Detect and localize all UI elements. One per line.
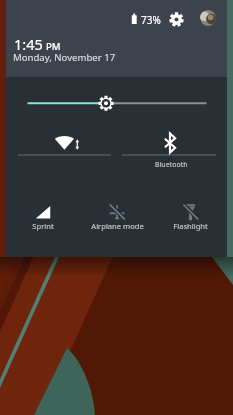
button[interactable]: Airplane mode bbox=[80, 198, 154, 243]
button[interactable]: Flashlight bbox=[154, 198, 227, 243]
staticText: 1:45 bbox=[14, 34, 43, 54]
button[interactable]: Settings bbox=[169, 12, 184, 27]
button[interactable]: Wi-Fi bbox=[6, 122, 116, 178]
button[interactable]: User profile bbox=[200, 10, 216, 26]
staticText: Bluetooth bbox=[155, 160, 188, 170]
staticText: Monday, November 17 bbox=[13, 51, 116, 64]
button[interactable]: Brightness bbox=[0, 0, 233, 132]
staticText: Airplane mode bbox=[91, 221, 144, 231]
staticText: Sprint bbox=[32, 221, 54, 231]
staticText: Flashlight bbox=[173, 221, 208, 231]
button[interactable]: Sprint bbox=[6, 198, 80, 243]
button[interactable]: Bluetooth bbox=[116, 122, 227, 178]
staticText: PM bbox=[46, 40, 61, 53]
staticText: 73% bbox=[141, 13, 161, 27]
